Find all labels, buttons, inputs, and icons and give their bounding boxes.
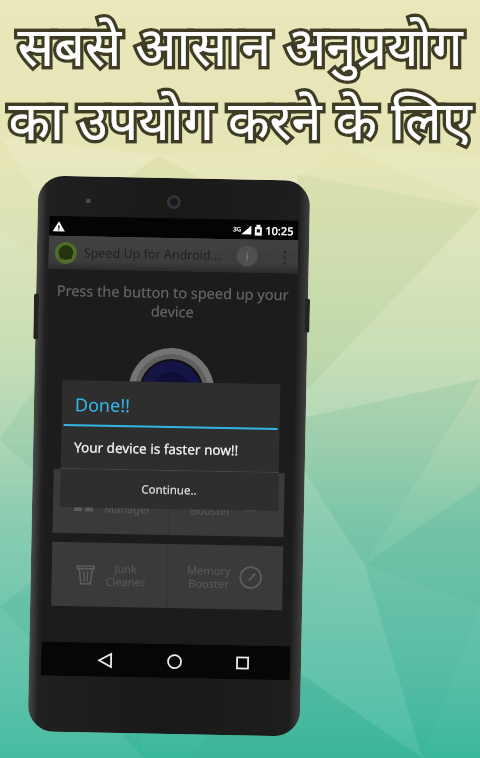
button[interactable]: Continue..: [60, 469, 279, 511]
staticText: Your device is faster now!!: [74, 438, 238, 459]
button[interactable]: Home: [158, 645, 190, 677]
staticText: i: [246, 248, 249, 263]
button[interactable]: Recents: [226, 646, 258, 679]
staticText: सबसे आसान अनुप्रयोग: [17, 8, 463, 82]
staticText: Done!!: [75, 392, 130, 418]
staticText: का उपयोग करने के लिए: [8, 82, 472, 156]
staticText: का उपयोग करने के लिए: [8, 82, 472, 156]
staticText: 10:25: [265, 223, 294, 238]
staticText: Continue..: [141, 481, 197, 499]
button[interactable]: Memory Booster: [167, 544, 283, 610]
staticText: App Manager: [104, 488, 151, 517]
staticText: Junk Cleaner: [105, 561, 146, 590]
button[interactable]: More options: [279, 245, 291, 269]
button[interactable]: Junk Cleaner: [51, 542, 167, 608]
staticText: Memory Booster: [186, 562, 231, 591]
button[interactable]: Info: [237, 245, 258, 267]
staticText: सबसे आसान अनुप्रयोग: [17, 8, 463, 82]
staticText: Press the button to speed up your device: [51, 280, 294, 323]
button[interactable]: App Manager: [52, 469, 169, 535]
staticText: Speed Up for Android...: [84, 244, 221, 264]
button[interactable]: Back: [89, 643, 121, 676]
staticText: 3G: [233, 225, 241, 233]
staticText: Speed Booster: [190, 489, 231, 518]
button[interactable]: Speed Booster: [168, 471, 285, 537]
